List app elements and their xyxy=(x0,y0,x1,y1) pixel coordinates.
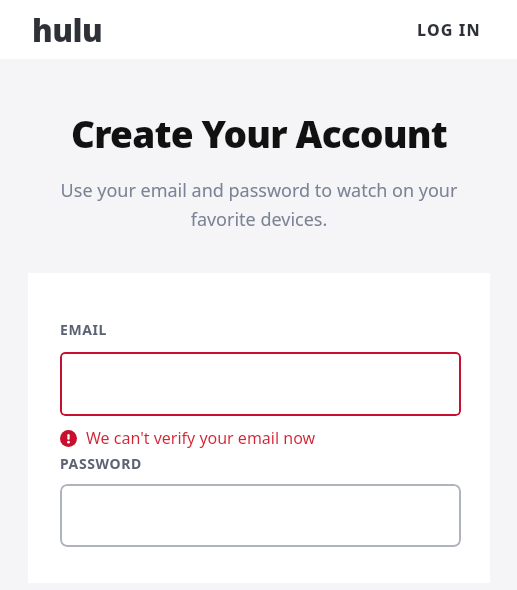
button[interactable]: Email input field xyxy=(60,352,461,416)
staticText: LOG IN xyxy=(417,19,481,41)
button[interactable]: LOG IN xyxy=(417,19,481,41)
staticText: EMAIL xyxy=(60,320,108,339)
staticText: hulu xyxy=(32,9,103,51)
staticText: PASSWORD xyxy=(60,454,142,473)
button[interactable]: Password input field xyxy=(60,484,461,547)
other: Error xyxy=(60,430,77,447)
button[interactable]: Hulu home xyxy=(32,9,103,51)
staticText: Create Your Account xyxy=(71,108,447,158)
staticText: We can't verify your email now xyxy=(86,427,316,449)
staticText: Use your email and password to watch on … xyxy=(54,178,464,231)
